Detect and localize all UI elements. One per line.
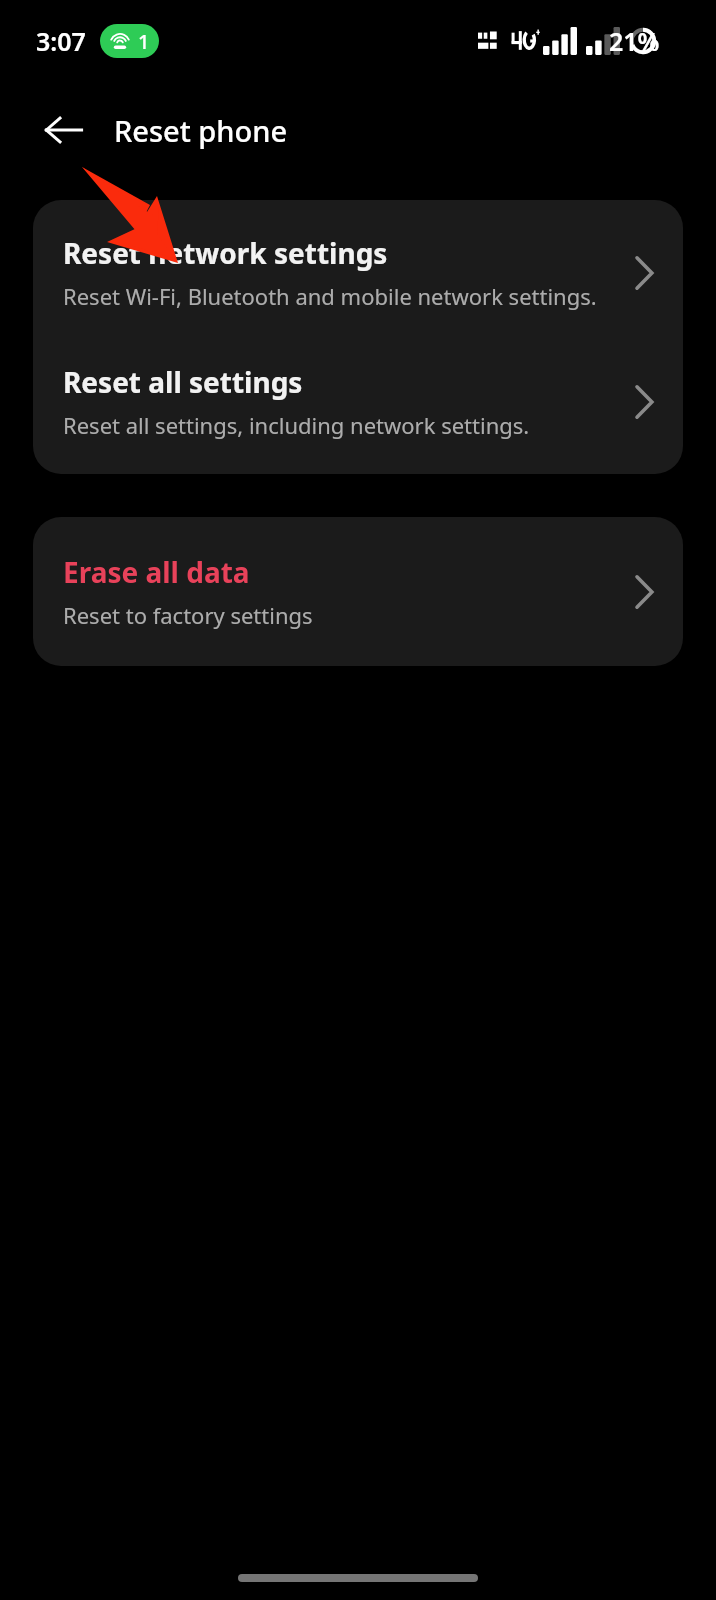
staticText: Reset phone [114,111,288,150]
staticText: 21% [609,24,660,58]
staticText: 1 [138,28,150,55]
staticText: Erase all data [63,553,250,591]
staticText: Reset network settings [63,234,388,272]
button[interactable]: Reset network settings [33,200,683,337]
button[interactable]: Reset all settings [33,337,683,474]
staticText: Reset all settings, including network se… [63,410,530,440]
staticText: 3:07 [36,24,86,58]
staticText: Reset to factory settings [63,600,313,630]
button[interactable]: Back [24,90,104,170]
staticText: Reset Wi-Fi, Bluetooth and mobile networ… [63,281,597,311]
staticText: Reset all settings [63,363,303,401]
button[interactable]: Erase all data [33,517,683,666]
